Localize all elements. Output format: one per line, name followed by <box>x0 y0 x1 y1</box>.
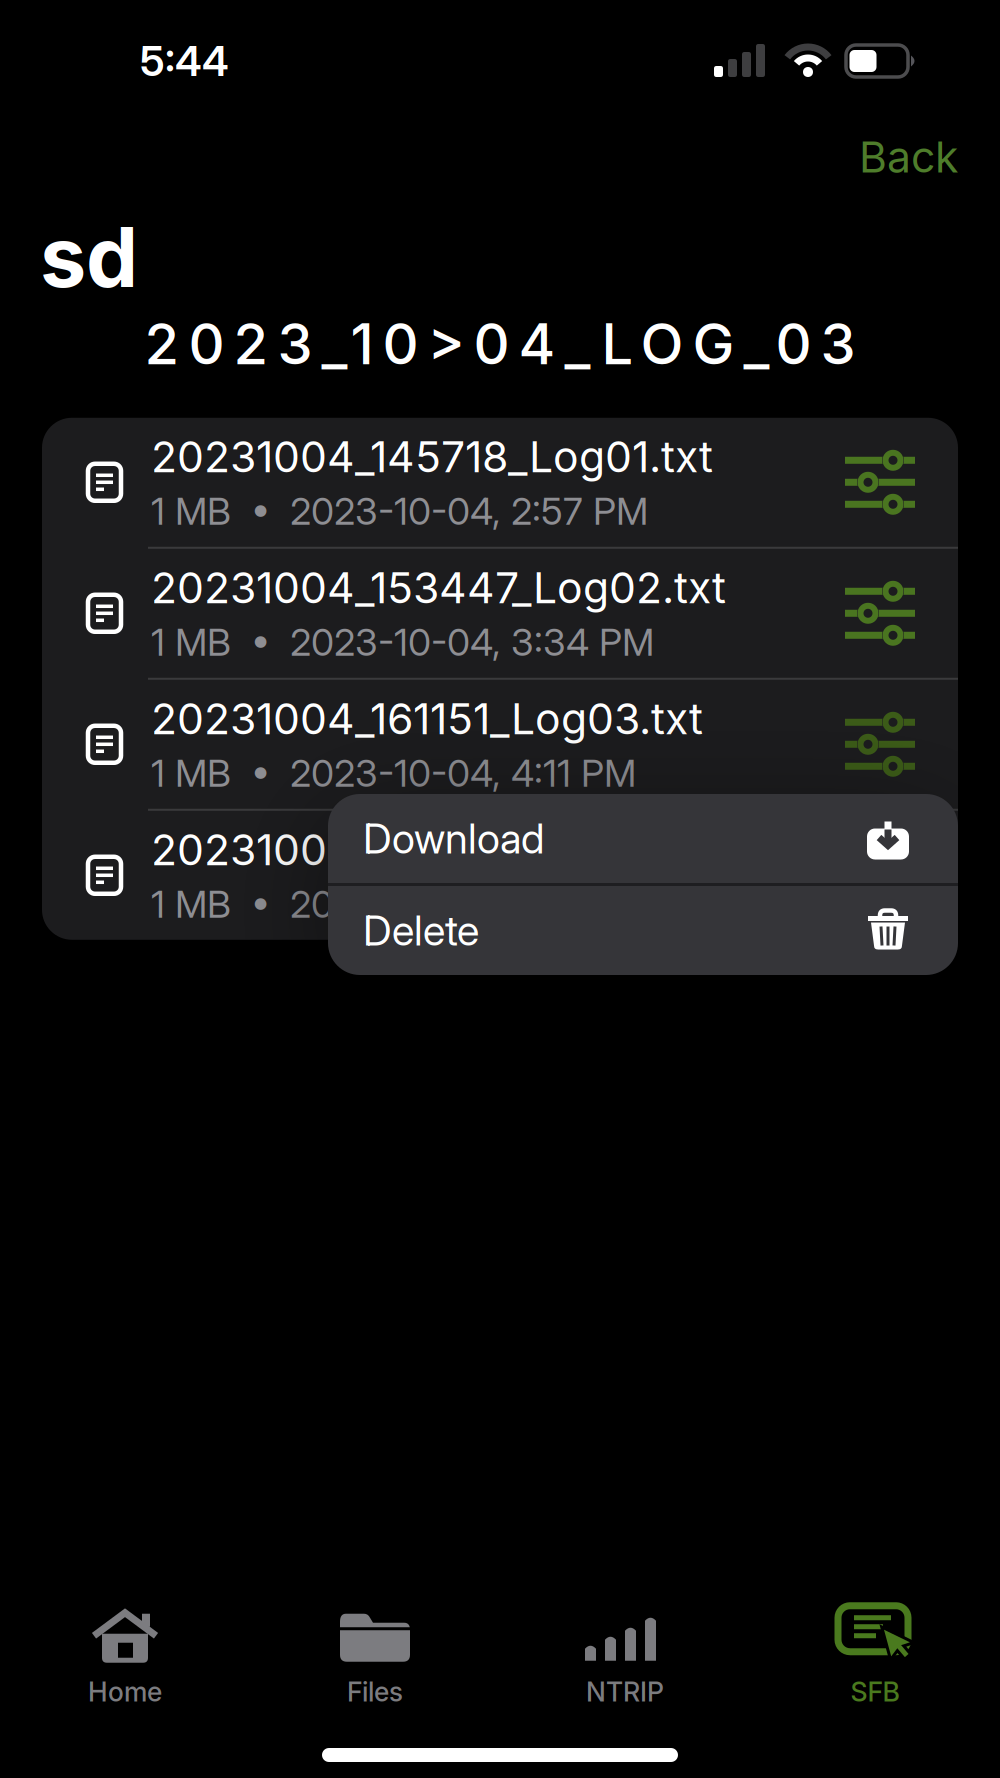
staticText: Back <box>859 131 958 183</box>
staticText: 20231004_145718_Log01.txt <box>151 431 713 482</box>
staticText: 5:44 <box>140 36 229 86</box>
button[interactable]: 20231004_145718_Log01.txt <box>42 418 958 547</box>
staticText: 1 MB • 2023-10-04, 2:57 PM <box>151 488 648 534</box>
staticText: Delete <box>363 905 479 955</box>
staticText: 1 MB • 2023-10-04, 4:33 PM <box>151 881 654 927</box>
button[interactable]: NTRIP <box>510 1608 740 1708</box>
staticText: Download <box>363 813 544 863</box>
staticText: 20231004_163318_Log04.txt <box>151 824 722 875</box>
staticText: SFB <box>850 1676 899 1708</box>
staticText: Home <box>88 1676 162 1708</box>
staticText: sd <box>40 207 138 307</box>
staticText: 20231004_161151_Log03.txt <box>151 693 703 744</box>
staticText: 1 MB • 2023-10-04, 3:34 PM <box>151 619 654 665</box>
staticText: 20231004_153447_Log02.txt <box>151 562 726 613</box>
button[interactable]: SFB <box>760 1608 990 1708</box>
button[interactable]: 20231004_161151_Log03.txt <box>42 680 958 809</box>
button[interactable]: 20231004_163318_Log04.txt <box>42 811 958 940</box>
button[interactable]: Files <box>260 1608 490 1708</box>
button[interactable]: Home <box>10 1608 240 1708</box>
button[interactable]: Delete <box>328 886 958 975</box>
button[interactable]: Back <box>859 131 958 183</box>
button[interactable]: Download <box>328 794 958 883</box>
button[interactable]: 20231004_153447_Log02.txt <box>42 549 958 678</box>
staticText: Files <box>347 1676 403 1708</box>
staticText: 1 MB • 2023-10-04, 4:11 PM <box>151 750 636 796</box>
staticText: NTRIP <box>586 1676 664 1708</box>
staticText: 2023_10>04_LOG_03 <box>144 310 855 378</box>
